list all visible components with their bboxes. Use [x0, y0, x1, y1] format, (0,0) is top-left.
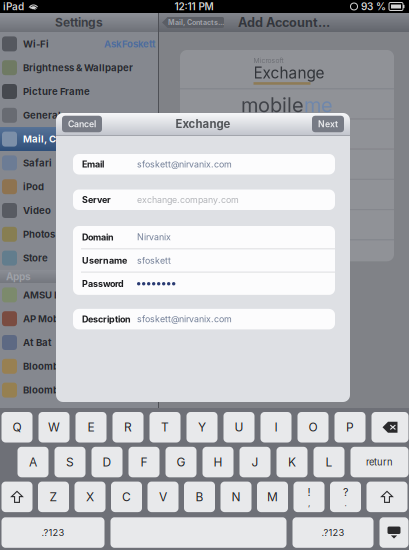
button[interactable]: Password: [73, 273, 335, 295]
staticText: Next: [318, 119, 338, 129]
staticText: Microsoft: [253, 56, 283, 65]
staticText: T: [161, 420, 169, 434]
button[interactable]: U: [223, 412, 254, 442]
button[interactable]: C: [111, 482, 142, 512]
staticText: D: [102, 455, 111, 469]
button[interactable]: G: [165, 447, 196, 477]
button[interactable]: Brightness & Wallpaper: [0, 56, 158, 80]
staticText: L: [325, 455, 332, 469]
button[interactable]: !: [293, 482, 324, 512]
staticText: Mail, Contacts...: [168, 18, 224, 27]
button[interactable]: Domain: [73, 226, 335, 248]
button[interactable]: General: [0, 103, 158, 127]
button[interactable]: B: [184, 482, 215, 512]
staticText: Username: [82, 255, 127, 266]
button[interactable]: Z: [38, 482, 69, 512]
button[interactable]: AMSU L: [0, 283, 158, 307]
button[interactable]: Hide keyboard: [379, 517, 408, 548]
button[interactable]: Picture Frame: [0, 80, 158, 103]
button[interactable]: A: [17, 447, 48, 477]
button[interactable]: Bloomb: [0, 378, 158, 402]
button[interactable]: Q: [1, 412, 32, 442]
button[interactable]: Bloomb: [0, 354, 158, 378]
button[interactable]: O: [297, 412, 328, 442]
button[interactable]: Mail, Co: [0, 127, 158, 151]
staticText: J: [251, 455, 258, 469]
button[interactable]: V: [147, 482, 178, 512]
button[interactable]: Video: [0, 199, 158, 222]
button[interactable]: D: [91, 447, 122, 477]
staticText: G: [176, 455, 185, 469]
button[interactable]: [110, 517, 286, 548]
staticText: Cancel: [68, 119, 96, 129]
staticText: R: [124, 420, 132, 434]
button[interactable]: Cancel: [62, 116, 102, 132]
button[interactable]: Email: [73, 154, 335, 174]
button[interactable]: S: [54, 447, 85, 477]
button[interactable]: T: [149, 412, 180, 442]
button[interactable]: Y: [186, 412, 217, 442]
staticText: H: [213, 455, 222, 469]
button[interactable]: .?123: [1, 517, 104, 548]
staticText: return: [366, 456, 393, 468]
staticText: A: [29, 455, 37, 469]
button[interactable]: N: [220, 482, 251, 512]
button[interactable]: X: [74, 482, 105, 512]
staticText: 93 %: [361, 0, 386, 13]
staticText: V: [159, 490, 167, 504]
button[interactable]: At Bat: [0, 331, 158, 354]
button[interactable]: ?: [330, 482, 361, 512]
button[interactable]: Shift: [366, 482, 407, 512]
button[interactable]: E: [75, 412, 106, 442]
staticText: iPod: [23, 181, 44, 192]
button[interactable]: Safari: [0, 151, 158, 175]
staticText: Picture Frame: [23, 86, 90, 97]
staticText: Apps: [6, 270, 31, 283]
staticText: sfoskett@nirvanix.com: [137, 159, 232, 169]
button[interactable]: Next: [312, 116, 344, 132]
button[interactable]: F: [128, 447, 159, 477]
button[interactable]: .?123: [292, 517, 373, 548]
staticText: Wi-Fi: [23, 38, 49, 50]
button[interactable]: Photos: [0, 222, 158, 246]
button[interactable]: Mail, Contacts...: [162, 17, 224, 28]
staticText: W: [48, 420, 60, 434]
staticText: X: [86, 490, 94, 504]
staticText: Domain: [82, 232, 114, 242]
staticText: E: [87, 420, 94, 434]
button[interactable]: Shift: [1, 482, 32, 512]
button[interactable]: W: [38, 412, 69, 442]
button[interactable]: Delete: [371, 412, 408, 442]
button[interactable]: Description: [73, 309, 335, 329]
button[interactable]: return: [350, 447, 408, 477]
button[interactable]: H: [202, 447, 233, 477]
button[interactable]: Wi-Fi: [0, 32, 158, 56]
staticText: Mail, Co: [23, 133, 62, 145]
button[interactable]: Username: [73, 249, 335, 272]
button[interactable]: J: [239, 447, 270, 477]
staticText: K: [288, 455, 296, 469]
button[interactable]: I: [260, 412, 291, 442]
staticText: Settings: [55, 15, 103, 30]
staticText: N: [231, 490, 240, 504]
staticText: General: [23, 109, 61, 121]
staticText: Brightness & Wallpaper: [23, 62, 133, 73]
staticText: Store: [23, 252, 48, 264]
button[interactable]: iPod: [0, 175, 158, 199]
staticText: .?123: [321, 527, 344, 538]
button[interactable]: Store: [0, 246, 158, 270]
button[interactable]: K: [276, 447, 307, 477]
staticText: Email: [82, 159, 104, 170]
staticText: ?: [343, 486, 348, 498]
button[interactable]: AP Mobi: [0, 307, 158, 331]
button[interactable]: M: [257, 482, 288, 512]
button[interactable]: L: [313, 447, 344, 477]
button[interactable]: R: [112, 412, 143, 442]
button[interactable]: Server: [73, 189, 335, 210]
staticText: Y: [198, 420, 206, 434]
staticText: Description: [82, 314, 131, 324]
button[interactable]: P: [334, 412, 365, 442]
staticText: me: [304, 93, 333, 117]
staticText: Add Account...: [238, 15, 330, 30]
